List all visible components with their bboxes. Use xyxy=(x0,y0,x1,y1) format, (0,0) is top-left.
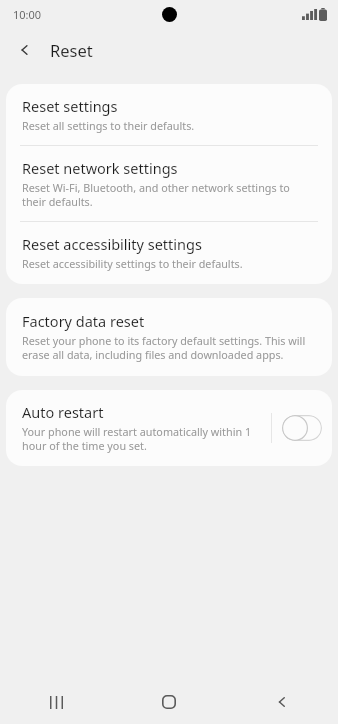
staticText: 10:00 xyxy=(13,7,42,22)
button[interactable]: Reset network settings xyxy=(6,146,332,221)
staticText: Reset Wi-Fi, Bluetooth, and other networ… xyxy=(22,180,316,209)
staticText: Reset accessibility settings to their de… xyxy=(22,256,243,271)
staticText: Reset network settings xyxy=(22,158,178,178)
staticText: Reset your phone to its factory default … xyxy=(22,333,316,362)
staticText: Your phone will restart automatically wi… xyxy=(22,424,263,453)
staticText: Factory data reset xyxy=(22,311,145,331)
button[interactable]: Factory data reset xyxy=(6,298,332,376)
staticText: Reset all settings to their defaults. xyxy=(22,118,195,133)
button[interactable]: Back xyxy=(6,31,44,69)
staticText: Reset accessibility settings xyxy=(22,234,202,254)
button[interactable]: Auto restart, off xyxy=(282,415,322,441)
button[interactable]: Back xyxy=(225,680,338,724)
staticText: Reset settings xyxy=(22,96,118,116)
staticText: Auto restart xyxy=(22,402,104,422)
button[interactable]: Recent apps xyxy=(0,680,112,724)
button[interactable]: Reset settings xyxy=(6,84,332,145)
button[interactable]: Auto restart xyxy=(6,390,332,466)
button[interactable]: Reset accessibility settings xyxy=(6,222,332,284)
staticText: Reset xyxy=(50,39,93,61)
button[interactable]: Home xyxy=(112,680,225,724)
